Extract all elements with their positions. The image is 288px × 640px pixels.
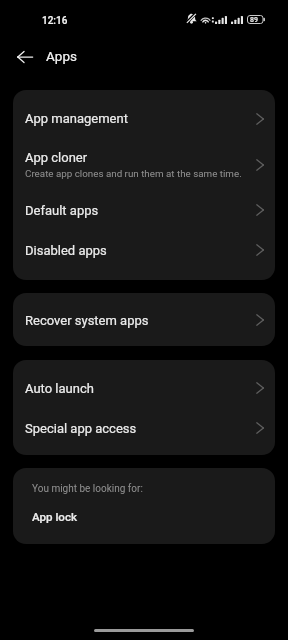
button[interactable]: App cloner <box>13 139 275 190</box>
staticText: Recover system apps <box>25 313 255 328</box>
button[interactable]: App management <box>13 98 275 139</box>
staticText: 12:16 <box>42 15 68 27</box>
button[interactable]: Auto launch <box>13 368 275 408</box>
button[interactable]: Default apps <box>13 190 275 230</box>
staticText: App cloner <box>25 150 88 165</box>
staticText: 89 <box>250 16 258 24</box>
button[interactable]: Special app access <box>13 408 275 448</box>
staticText: App lock <box>32 510 78 524</box>
staticText: Create app clones and run them at the sa… <box>25 168 242 179</box>
button[interactable]: Back <box>9 40 41 72</box>
button[interactable]: App lock <box>13 501 275 533</box>
staticText: Default apps <box>25 203 255 218</box>
staticText: App management <box>25 111 255 126</box>
staticText: Disabled apps <box>25 243 255 258</box>
staticText: Apps <box>46 48 77 64</box>
staticText: Auto launch <box>25 381 255 396</box>
staticText: Special app access <box>25 421 255 436</box>
button[interactable]: Disabled apps <box>13 230 275 270</box>
button[interactable]: Recover system apps <box>13 300 275 340</box>
staticText: You might be looking for: <box>32 483 143 495</box>
